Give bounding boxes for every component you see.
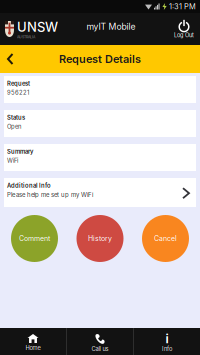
staticText: i <box>165 332 168 346</box>
staticText: Comment <box>19 234 50 243</box>
staticText: Home <box>25 344 40 351</box>
staticText: Additional Info <box>7 182 51 189</box>
staticText: UNSW <box>17 19 58 35</box>
staticText: Request <box>7 80 30 87</box>
staticText: Request Details <box>59 52 141 66</box>
staticText: Log Out <box>174 32 194 39</box>
button[interactable]: History <box>76 215 123 262</box>
staticText: myIT Mobile <box>86 21 135 32</box>
button[interactable]: Back <box>0 45 20 73</box>
button[interactable]: Cancel <box>142 215 189 262</box>
staticText: Call us <box>91 345 108 352</box>
button[interactable]: Comment <box>11 215 58 262</box>
button[interactable]: Log Out <box>168 13 200 45</box>
staticText: Status <box>7 114 25 121</box>
staticText: Open <box>7 123 21 130</box>
button[interactable]: i <box>134 328 200 355</box>
staticText: WiFi <box>7 157 18 164</box>
staticText: 956221 <box>7 89 29 96</box>
staticText: 1:31 PM <box>169 2 196 11</box>
staticText: AUSTRALIA <box>17 35 35 39</box>
button[interactable]: Additional Info <box>0 178 200 207</box>
staticText: Summary <box>7 148 33 155</box>
staticText: Cancel <box>154 234 177 243</box>
button[interactable]: Call us <box>67 328 133 355</box>
button[interactable]: Home <box>0 328 66 355</box>
staticText: Please help me set up my WiFi <box>7 191 93 198</box>
staticText: History <box>88 234 112 243</box>
staticText: Info <box>162 345 172 352</box>
